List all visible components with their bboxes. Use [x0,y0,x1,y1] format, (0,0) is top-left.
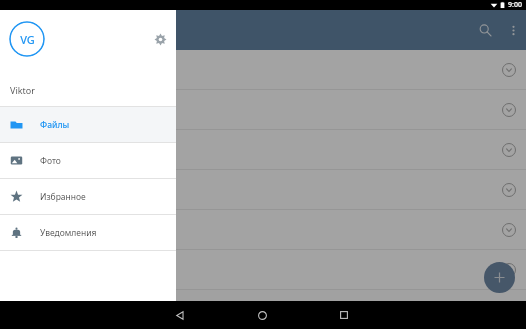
button[interactable]: Файлы [0,107,176,142]
staticText: Избранное [40,191,86,203]
button[interactable]: Home [248,301,276,329]
button[interactable]: Избранное [0,179,176,214]
button[interactable]: Уведомления [0,215,176,250]
staticText: Фото [40,155,61,167]
staticText: Файлы [40,119,70,131]
staticText: Уведомления [40,227,97,239]
button[interactable]: Expand [496,257,522,283]
button[interactable]: Фото [0,143,176,178]
button[interactable]: Add [484,262,515,293]
button[interactable]: Expand [0,130,526,170]
button[interactable]: Expand [496,97,522,123]
button[interactable]: Expand [0,210,526,250]
staticText: VG [20,32,35,47]
button[interactable]: Expand [0,250,526,290]
button[interactable]: Search [470,15,500,45]
button[interactable]: Expand [496,177,522,203]
button[interactable]: Back [166,301,194,329]
button[interactable]: VG [9,21,45,57]
button[interactable]: Expand [496,217,522,243]
button[interactable]: Recents [330,301,358,329]
button[interactable]: Expand [0,50,526,90]
staticText: Viktor [10,84,35,96]
staticText: 9:00 [508,0,522,10]
button[interactable]: Settings [149,28,171,50]
button[interactable]: More options [500,17,526,43]
button[interactable]: Expand [496,57,522,83]
button[interactable]: Expand [0,90,526,130]
button[interactable]: Expand [0,170,526,210]
button[interactable]: Expand [496,137,522,163]
